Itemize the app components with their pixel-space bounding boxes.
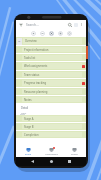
staticText: Notes — [24, 98, 32, 102]
button[interactable]: Notifications — [40, 146, 63, 157]
staticText: Team status — [24, 73, 40, 77]
button[interactable]: Back — [31, 160, 34, 163]
staticText: Board — [25, 153, 32, 156]
staticText: Progress tracking — [24, 81, 47, 85]
other: Filter — [19, 23, 23, 27]
staticText: Detail — [21, 106, 29, 110]
staticText: Stage B — [24, 125, 34, 129]
button[interactable]: Stage A — [16, 115, 86, 122]
staticText: Item — [21, 111, 27, 114]
button[interactable]: Completion — [16, 131, 86, 138]
staticText: Notifications — [45, 153, 59, 156]
button[interactable]: Tool 1 — [31, 31, 36, 36]
staticText: Profile — [71, 153, 78, 156]
other: More — [80, 23, 83, 26]
staticText: Project information — [24, 48, 49, 52]
button[interactable]: Filter — [16, 20, 86, 29]
button[interactable]: Detail — [16, 104, 86, 115]
staticText: ID — [18, 40, 21, 43]
button[interactable]: Tool 2 — [40, 31, 45, 36]
staticText: Stage A — [24, 117, 34, 121]
button[interactable]: Board — [16, 146, 40, 157]
staticText: Overview — [25, 39, 37, 43]
staticText: Completion — [24, 133, 39, 137]
button[interactable]: ID — [16, 37, 86, 45]
button[interactable]: Resource planning — [16, 88, 86, 95]
staticText: Work assignments — [24, 64, 48, 68]
staticText: Resource planning — [24, 90, 48, 94]
button[interactable]: Team status — [16, 71, 86, 78]
button[interactable]: Tool 3 — [49, 31, 54, 36]
button[interactable]: Home — [50, 160, 53, 163]
button[interactable]: Work assignments — [16, 62, 86, 70]
other: Search — [68, 23, 72, 27]
button[interactable]: Tool 4 — [58, 31, 63, 36]
button[interactable]: Project information — [16, 46, 86, 53]
button[interactable]: Tasks list — [16, 54, 86, 61]
button[interactable]: Notes — [16, 96, 86, 103]
button[interactable]: Stage B — [16, 123, 86, 130]
staticText: Tasks list — [24, 56, 36, 60]
staticText: Search... — [26, 23, 39, 27]
button[interactable]: Tool 5 — [67, 31, 72, 36]
button[interactable]: Progress tracking — [16, 79, 86, 87]
button[interactable]: Profile — [63, 146, 86, 157]
